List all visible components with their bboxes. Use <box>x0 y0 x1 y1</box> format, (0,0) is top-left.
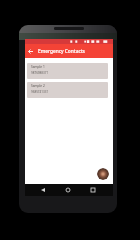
staticText: 9685741331 <box>31 90 49 94</box>
button[interactable]: Home <box>63 185 73 195</box>
staticText: Sample 2 <box>31 84 45 88</box>
staticText: 9876988371 <box>31 71 49 75</box>
staticText: Emergency Contacts <box>38 48 85 55</box>
staticText: Sample 1 <box>31 65 45 69</box>
button[interactable]: Sample 2 <box>27 82 108 98</box>
button[interactable]: Back <box>25 46 35 56</box>
button[interactable]: Sample 1 <box>27 63 108 79</box>
button[interactable]: Recents <box>88 185 98 195</box>
button[interactable]: Add contact <box>97 168 109 180</box>
button[interactable]: Back <box>38 185 48 195</box>
